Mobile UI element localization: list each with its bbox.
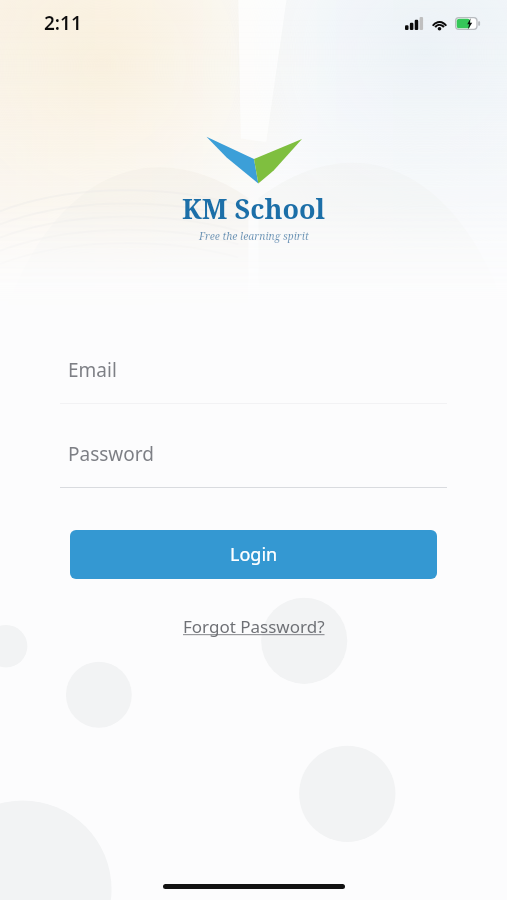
staticText: Email [68,357,117,383]
button[interactable]: Password [60,439,447,488]
staticText: Password [68,441,154,467]
staticText: Free the learning spirit [199,229,309,243]
staticText: 2:11 [44,10,82,36]
staticText: Login [230,542,278,567]
staticText: KM School [182,190,326,227]
button[interactable]: Login [70,530,437,579]
staticText: Forgot Password? [183,615,325,638]
button[interactable]: Email [60,355,447,404]
button[interactable]: Forgot Password? [169,609,339,644]
